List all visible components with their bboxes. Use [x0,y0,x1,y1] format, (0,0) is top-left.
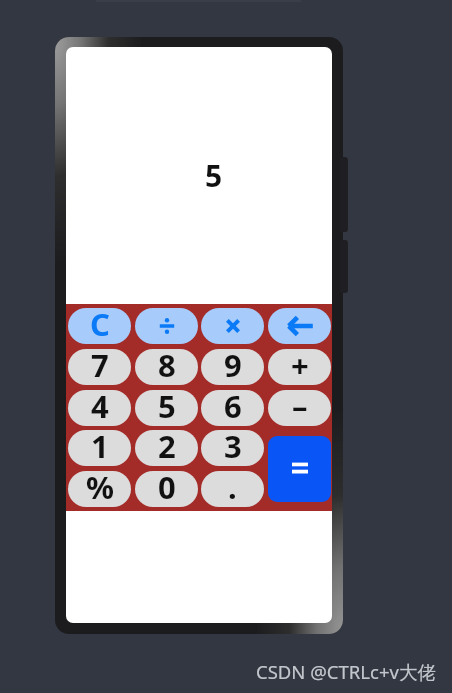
staticText: 5 [158,390,176,421]
staticText: 1 [91,430,109,461]
staticText: – [292,390,308,421]
staticText: 5 [205,155,223,196]
button[interactable]: C [68,308,131,344]
button[interactable]: + [268,349,331,385]
staticText: + [291,349,309,380]
button[interactable]: Divide [135,308,198,344]
button[interactable]: Backspace [268,308,331,344]
staticText: . [228,471,237,502]
staticText: C [90,308,110,339]
button[interactable]: 9 [201,349,264,385]
button[interactable]: Multiply [201,308,264,344]
button[interactable]: 2 [135,430,198,466]
button[interactable]: 7 [68,349,131,385]
staticText: 7 [91,349,109,380]
staticText: CSDN @CTRLc+v大佬 [256,659,436,684]
button[interactable]: % [68,471,131,507]
button[interactable]: 1 [68,430,131,466]
button[interactable]: 4 [68,390,131,426]
button[interactable]: 3 [201,430,264,466]
button[interactable]: 0 [135,471,198,507]
staticText: 8 [158,349,176,380]
staticText: 3 [224,430,242,461]
button[interactable]: 8 [135,349,198,385]
button[interactable] [268,436,331,502]
staticText: 6 [224,390,242,421]
staticText: 4 [91,390,109,421]
button[interactable]: . [201,471,264,507]
staticText: 2 [158,430,176,461]
staticText: 0 [158,471,176,502]
staticText: % [86,471,114,502]
staticText: 9 [224,349,242,380]
button[interactable]: – [268,390,331,426]
button[interactable]: 6 [201,390,264,426]
button[interactable]: 5 [135,390,198,426]
